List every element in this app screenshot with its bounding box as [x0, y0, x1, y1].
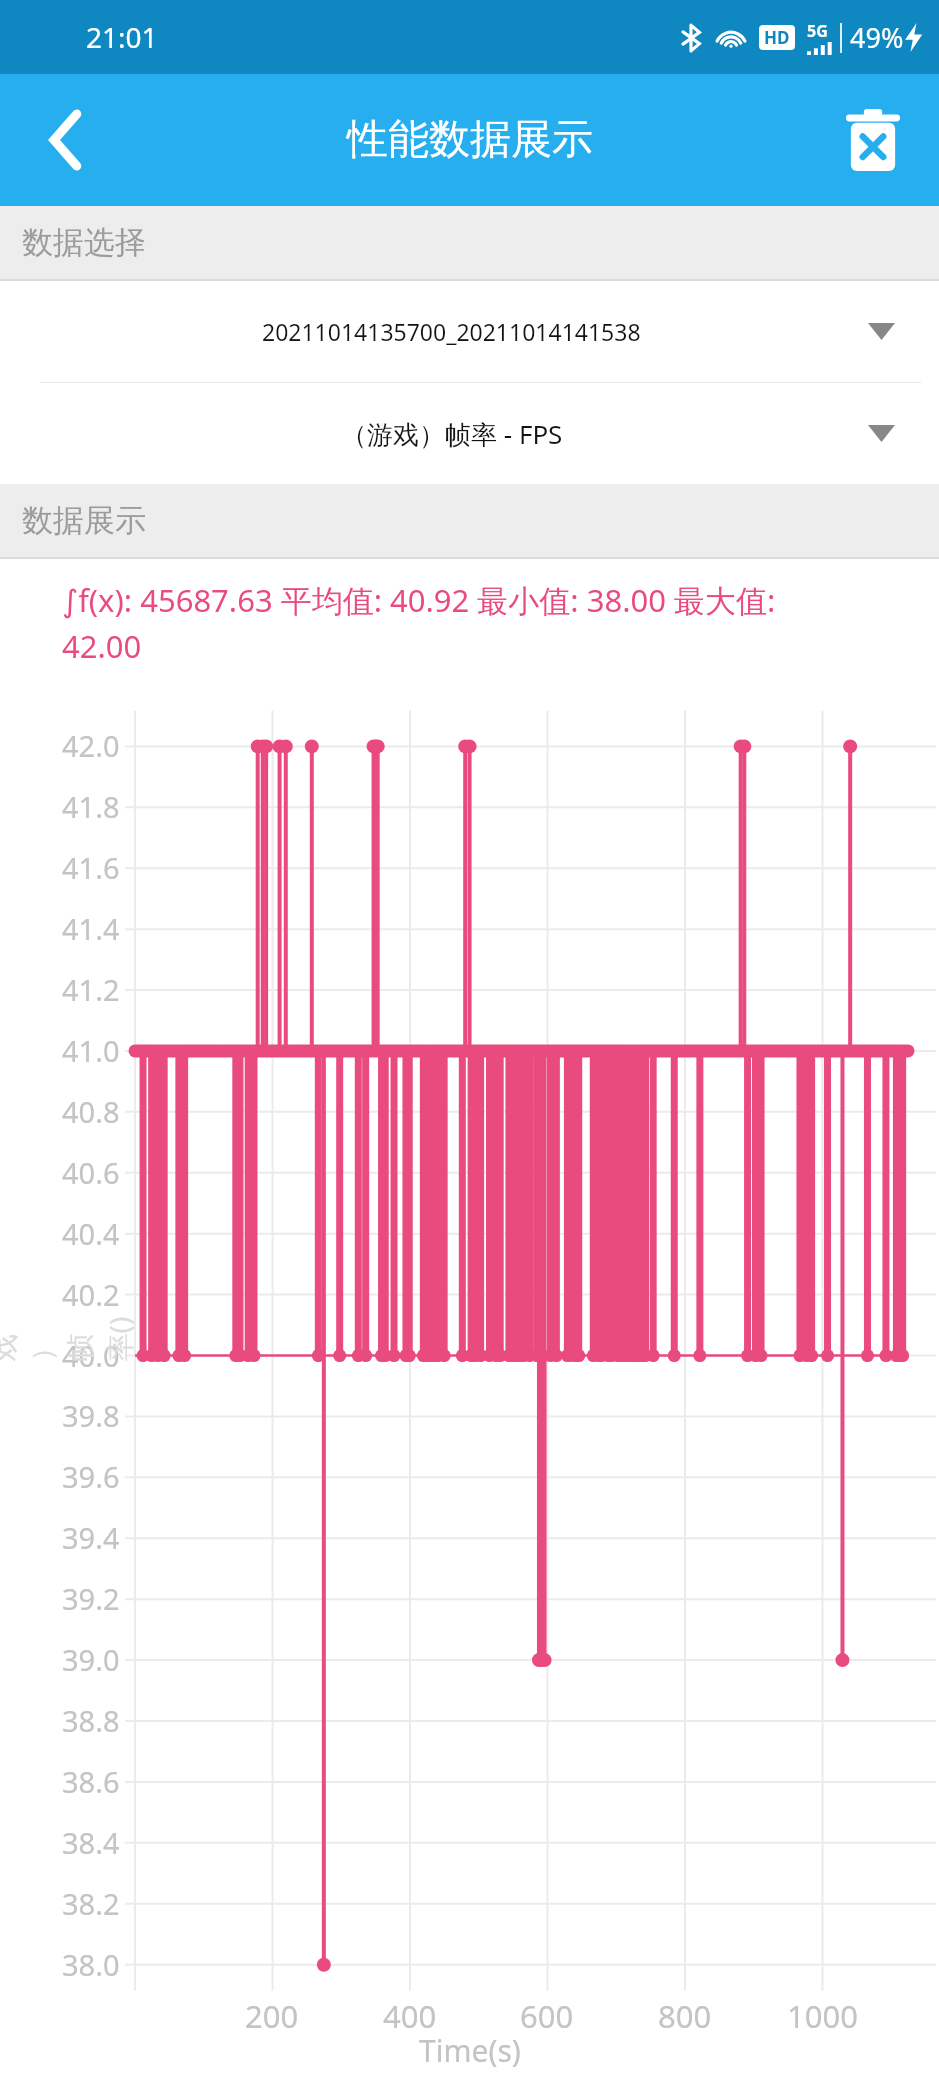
staticText: 20211014135700_20211014141538: [262, 316, 641, 347]
staticText: 41.6: [62, 848, 120, 887]
staticText: （游戏）帧率(): [0, 1313, 137, 1361]
staticText: 39.4: [62, 1518, 120, 1557]
staticText: HD: [764, 26, 790, 49]
staticText: 39.8: [62, 1396, 120, 1435]
staticText: 42.0: [62, 726, 120, 765]
button[interactable]: Back: [20, 94, 112, 186]
staticText: 1000: [787, 1995, 858, 2037]
staticText: 42.00: [62, 625, 142, 667]
staticText: 40.6: [62, 1153, 120, 1192]
staticText: 21:01: [86, 18, 158, 56]
staticText: 5G: [807, 20, 828, 42]
staticText: 39.2: [62, 1579, 120, 1618]
staticText: 200: [245, 1995, 299, 2037]
staticText: 41.8: [62, 787, 120, 826]
staticText: ∫f(x): 45687.63 平均值: 40.92 最小值: 38.00 最大…: [62, 579, 776, 621]
staticText: 41.4: [62, 909, 120, 948]
staticText: 40.4: [62, 1214, 120, 1253]
staticText: 40.0: [62, 1336, 120, 1375]
button[interactable]: 20211014135700_20211014141538: [0, 281, 939, 382]
staticText: 41.0: [62, 1031, 120, 1070]
staticText: 40.8: [62, 1092, 120, 1131]
staticText: 性能数据展示: [347, 114, 593, 166]
staticText: 39.0: [62, 1640, 120, 1679]
staticText: 400: [383, 1995, 437, 2037]
staticText: 38.4: [62, 1823, 120, 1862]
staticText: 600: [520, 1995, 574, 2037]
staticText: 数据选择: [22, 223, 146, 262]
staticText: 800: [658, 1995, 712, 2037]
staticText: Time(s): [419, 2030, 521, 2071]
staticText: 38.6: [62, 1762, 120, 1801]
staticText: 39.6: [62, 1457, 120, 1496]
staticText: （游戏）帧率 - FPS: [341, 416, 563, 452]
staticText: 数据展示: [22, 501, 146, 540]
staticText: 49%: [850, 19, 904, 56]
staticText: 38.8: [62, 1701, 120, 1740]
staticText: 40.2: [62, 1275, 120, 1314]
staticText: 38.0: [62, 1945, 120, 1984]
button[interactable]: Delete: [827, 94, 919, 186]
staticText: 38.2: [62, 1884, 120, 1923]
button[interactable]: （游戏）帧率 - FPS: [0, 383, 939, 484]
staticText: 41.2: [62, 970, 120, 1009]
